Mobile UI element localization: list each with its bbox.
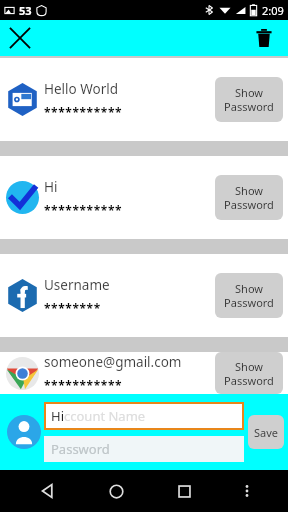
button[interactable]: More options (232, 476, 262, 506)
staticText: *********** (44, 104, 123, 120)
button[interactable]: Show Password (215, 352, 283, 394)
staticText: Hello World (44, 80, 119, 98)
staticText: 2:09 (262, 3, 284, 18)
button[interactable]: Show Password (215, 273, 283, 318)
staticText: ******** (44, 300, 101, 316)
button[interactable]: Hello World (0, 58, 288, 141)
staticText: Show Password (224, 85, 274, 114)
button[interactable]: Show Password (215, 77, 283, 122)
button[interactable]: Delete (248, 22, 280, 54)
staticText: *********** (44, 202, 123, 218)
staticText: Show Password (224, 183, 274, 212)
button[interactable]: Recents (163, 470, 205, 512)
staticText: Hi (44, 178, 58, 196)
button[interactable]: Password (44, 436, 244, 462)
staticText: Username (44, 276, 110, 294)
button[interactable]: Back (26, 470, 68, 512)
button[interactable]: Username (0, 254, 288, 337)
button[interactable]: Save (248, 415, 284, 449)
staticText: someone@gmail.com (44, 353, 182, 371)
staticText: Hi (51, 407, 64, 425)
staticText: Show Password (224, 281, 274, 310)
staticText: 53 (19, 3, 32, 18)
staticText: Save (254, 425, 279, 440)
staticText: Password (51, 440, 110, 458)
staticText: Show Password (224, 359, 274, 388)
button[interactable]: someone@gmail.com (0, 352, 288, 394)
button[interactable]: Hi (0, 156, 288, 239)
button[interactable]: Show Password (215, 175, 283, 220)
button[interactable]: Hi (44, 402, 244, 430)
staticText: ccount Name (64, 407, 146, 425)
button[interactable]: Close (3, 21, 37, 55)
staticText: *********** (44, 377, 123, 393)
button[interactable]: Home (95, 470, 137, 512)
